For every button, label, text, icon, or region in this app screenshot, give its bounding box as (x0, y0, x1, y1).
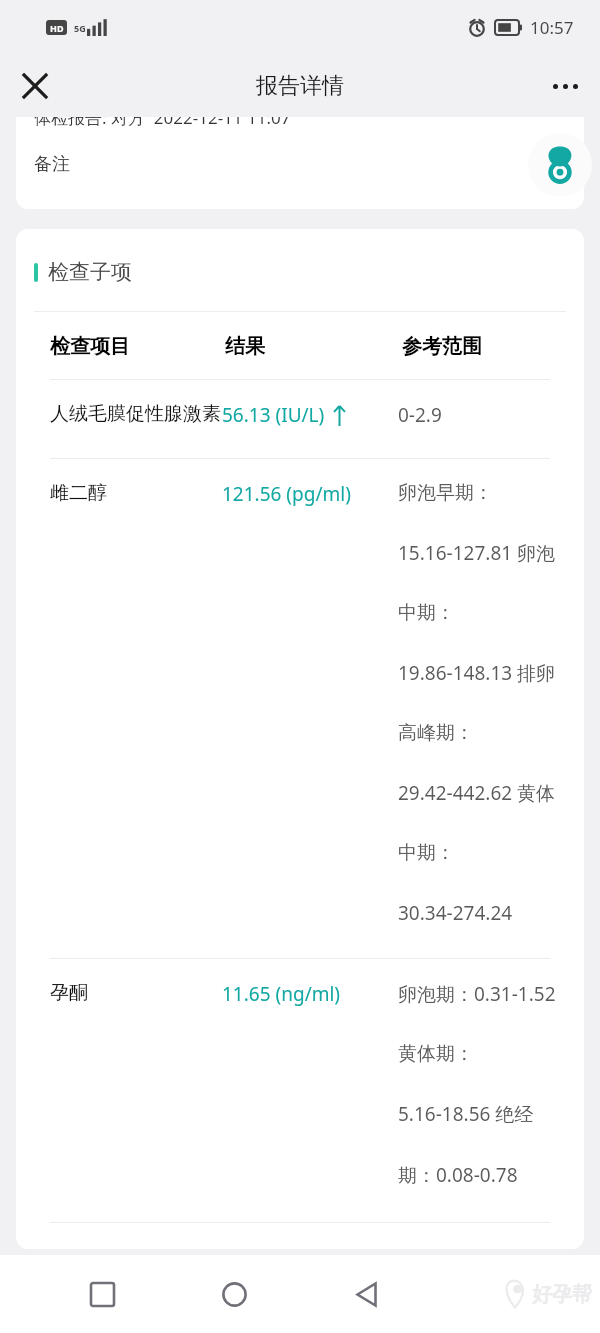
staticText: 检查项目 (50, 334, 225, 359)
button[interactable]: 体检报告: 对方 2022-12-11 11:07 (16, 117, 584, 209)
staticText: 121.56 (pg/ml) (222, 481, 351, 507)
button[interactable]: Assistant (528, 133, 592, 197)
staticText: 参考范围 (402, 334, 482, 359)
staticText: 0-2.9 (398, 402, 442, 428)
staticText: 5G (74, 22, 86, 34)
staticText: 雌二醇 (50, 481, 222, 505)
button[interactable]: Back (336, 1264, 396, 1324)
staticText: 卵泡早期：15.16-127.81 卵泡中期：19.86-148.13 排卵高峰… (398, 481, 564, 926)
staticText: HD (50, 22, 64, 34)
button[interactable]: More options (540, 61, 590, 111)
staticText: 检查子项 (48, 259, 132, 285)
staticText: 孕酮 (50, 981, 222, 1005)
staticText: 卵泡期：0.31-1.52 黄体期：5.16-18.56 绝经期：0.08-0.… (398, 981, 564, 1188)
button[interactable]: Close (10, 61, 60, 111)
button[interactable]: Recents (72, 1264, 132, 1324)
button[interactable]: Home (204, 1264, 264, 1324)
staticText: 10:57 (530, 16, 574, 39)
button[interactable]: 雌二醇 (16, 459, 584, 958)
staticText: 好孕帮 (532, 1282, 592, 1307)
staticText: 体检报告: 对方 2022-12-11 11:07 (34, 117, 291, 129)
staticText: 人绒毛膜促性腺激素 (50, 402, 222, 426)
button[interactable]: 孕酮 (16, 959, 584, 1222)
staticText: 报告详情 (256, 72, 344, 100)
staticText: 备注 (34, 153, 70, 176)
staticText: 56.13 (IU/L) (222, 402, 325, 428)
button[interactable]: 人绒毛膜促性腺激素 (16, 380, 584, 458)
staticText: 11.65 (ng/ml) (222, 981, 341, 1007)
staticText: 结果 (225, 334, 402, 359)
